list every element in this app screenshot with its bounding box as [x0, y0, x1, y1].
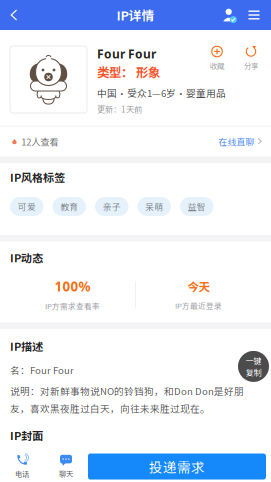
button[interactable]: 教育 — [52, 197, 86, 216]
button[interactable]: 亲子 — [95, 197, 128, 216]
staticText: IP风格标签 — [10, 169, 65, 185]
button[interactable]: 呆萌 — [137, 197, 171, 216]
staticText: 今天 — [187, 278, 209, 295]
button[interactable]: 电话 — [0, 453, 44, 480]
staticText: 12人查看 — [21, 135, 58, 148]
staticText: 电话 — [15, 468, 29, 479]
button[interactable]: 在线直聊 — [219, 135, 262, 148]
staticText: 更新：1天前 — [97, 103, 142, 115]
staticText: 说明：对新鲜事物说NO的铃铛狗，和Don Don是好朋友，喜欢黑夜胜过白天，向往… — [10, 384, 244, 415]
staticText: 在线直聊 — [219, 135, 255, 148]
button[interactable]: Back — [0, 0, 28, 30]
button[interactable]: 分享 — [240, 46, 262, 71]
button[interactable]: 益智 — [180, 197, 213, 216]
button[interactable]: 可爱 — [10, 197, 43, 216]
staticText: 益智 — [188, 200, 206, 213]
button[interactable]: 一键 — [238, 351, 269, 382]
staticText: 收藏 — [210, 60, 224, 71]
staticText: IP详情 — [116, 6, 154, 24]
staticText: 可爱 — [18, 200, 36, 213]
staticText: IP封面 — [10, 427, 43, 443]
staticText: 类型： 形象 — [97, 63, 160, 81]
staticText: 100% — [54, 277, 90, 295]
staticText: 复制 — [245, 366, 261, 378]
staticText: 一键 — [245, 355, 261, 366]
button[interactable]: Menu — [242, 0, 266, 30]
staticText: 名：Four Four — [10, 363, 74, 377]
staticText: 呆萌 — [145, 200, 163, 213]
staticText: 投递需求 — [149, 457, 205, 476]
staticText: 分享 — [244, 60, 258, 71]
staticText: IP描述 — [10, 338, 43, 354]
button[interactable]: 投递需求 — [88, 453, 266, 479]
button[interactable]: Contacts — [216, 0, 242, 30]
staticText: IP动态 — [10, 249, 43, 265]
staticText: 聊天 — [59, 468, 73, 479]
staticText: 教育 — [60, 200, 78, 213]
staticText: 亲子 — [103, 200, 121, 213]
staticText: IP方需求查看率 — [45, 300, 100, 311]
button[interactable]: 收藏 — [206, 46, 228, 71]
staticText: 中国·受众1—6岁·婴童用品 — [97, 86, 226, 100]
button[interactable]: 聊天 — [44, 453, 88, 480]
staticText: Four Four — [97, 46, 156, 62]
staticText: IP方最近登录 — [175, 300, 222, 311]
